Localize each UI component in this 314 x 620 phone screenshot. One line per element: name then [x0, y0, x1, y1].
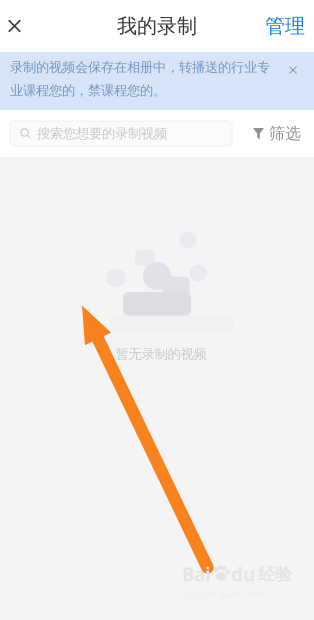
staticText: 搜索您想要的录制视频 [37, 125, 167, 142]
staticText: 筛选 [269, 124, 301, 143]
staticText: 管理 [265, 14, 305, 38]
staticText: 我的录制 [117, 14, 197, 38]
staticText: Bai [182, 562, 211, 587]
staticText: 经验 [258, 564, 292, 585]
staticText: 业课程您的，禁课程您的。 [10, 82, 166, 99]
staticText: du [231, 562, 255, 587]
button[interactable]: 筛选 [240, 110, 314, 157]
button[interactable]: 关闭 [0, 1, 29, 50]
staticText: 录制的视频会保存在相册中，转播送的行业专 [10, 59, 270, 75]
button[interactable]: 关闭提示 [284, 61, 302, 79]
staticText: 暂无录制的视频 [115, 346, 206, 362]
button[interactable]: 管理 [253, 1, 314, 50]
